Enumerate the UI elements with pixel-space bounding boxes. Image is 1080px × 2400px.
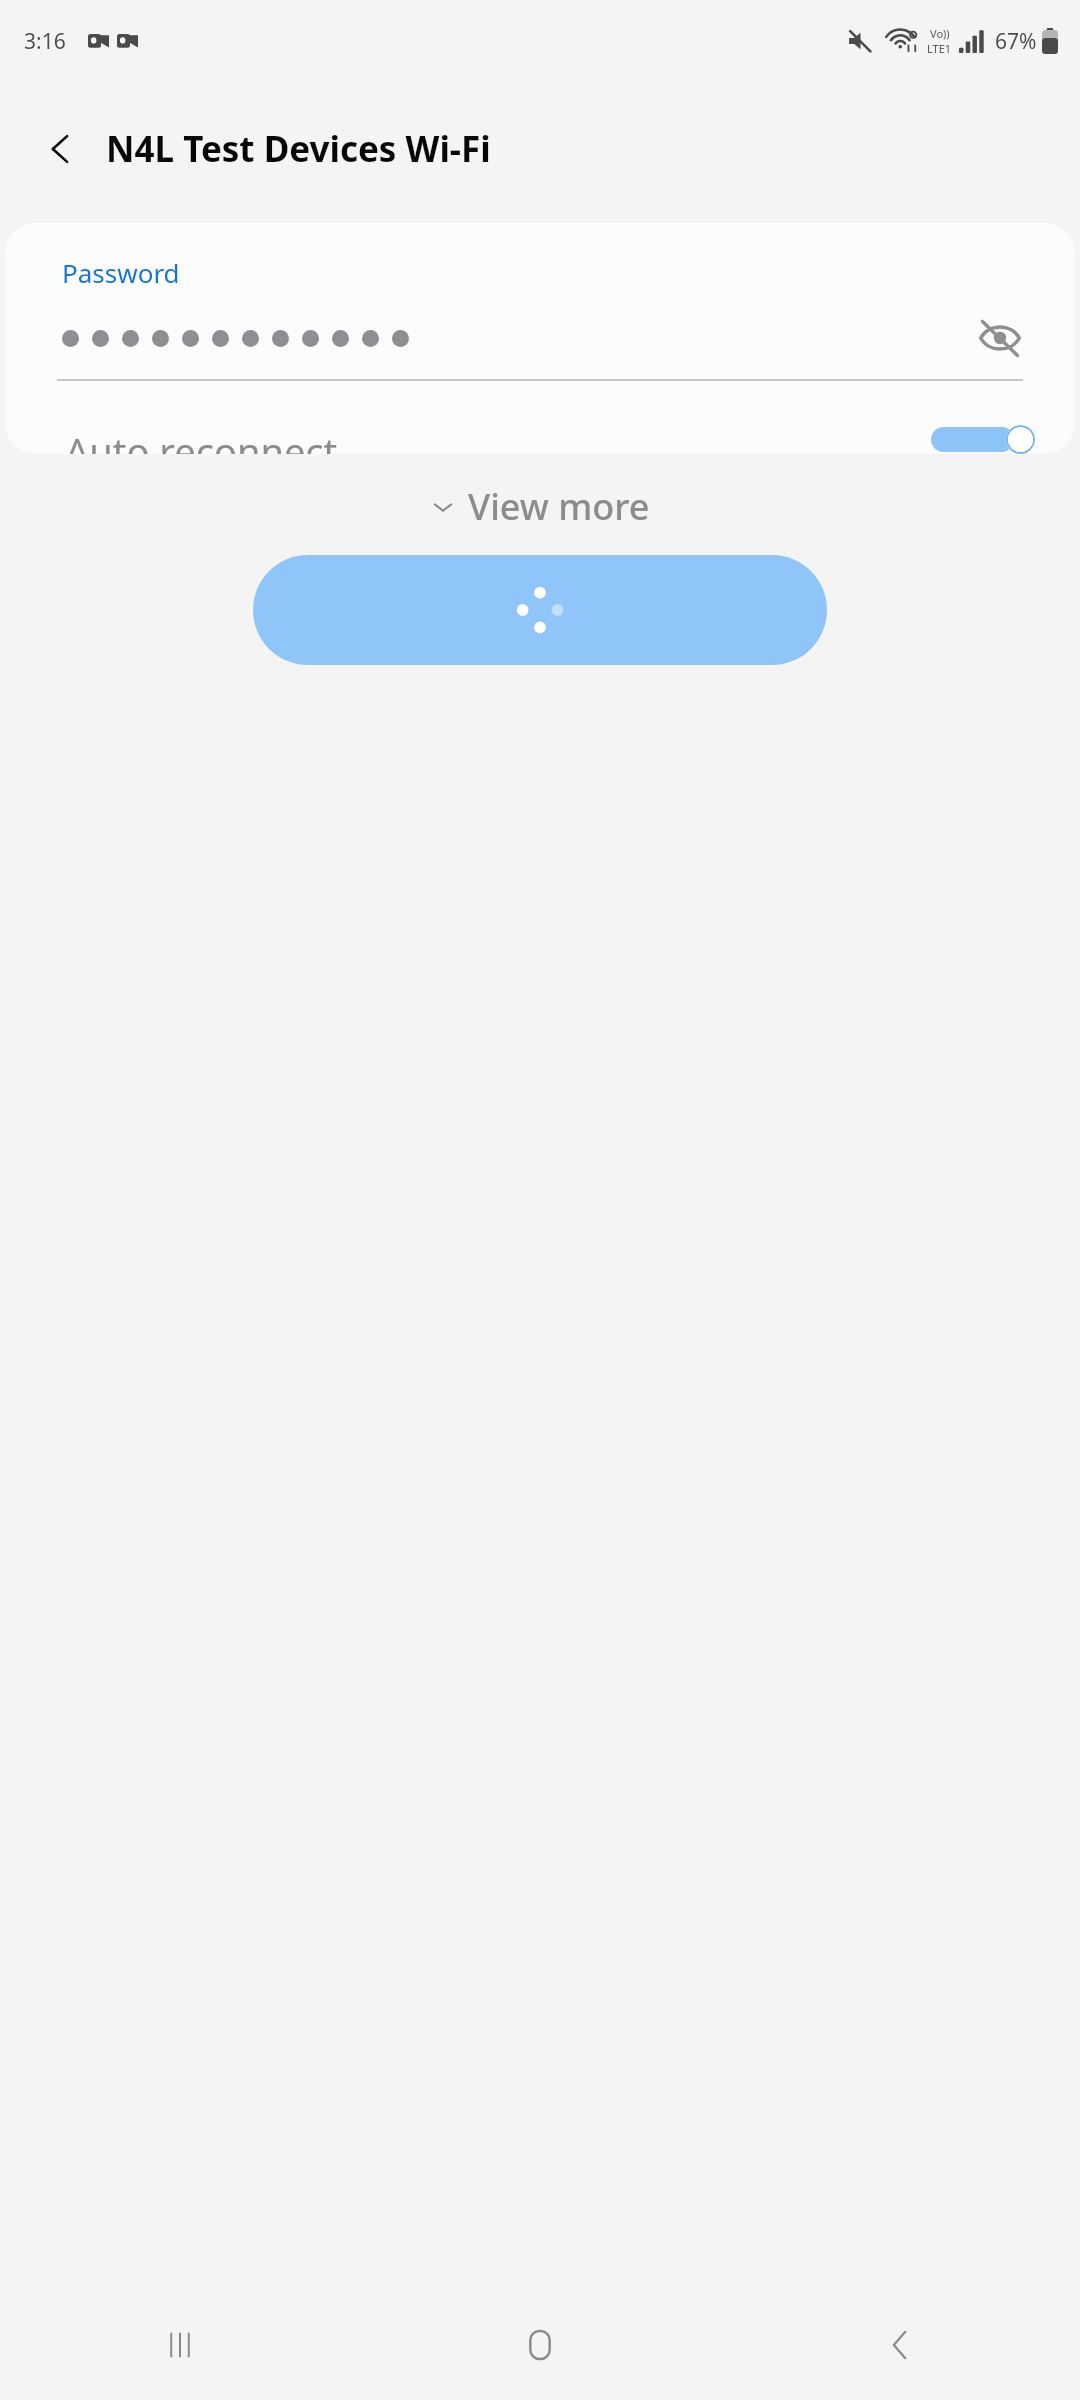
staticText: LTE1 — [927, 41, 952, 56]
button[interactable]: Show password — [969, 310, 1031, 366]
staticText: Vo)) — [930, 26, 950, 41]
button[interactable]: Recent apps — [0, 2290, 360, 2400]
button[interactable]: Back — [720, 2290, 1080, 2400]
button[interactable]: Back — [34, 122, 88, 176]
staticText: Auto reconnect — [65, 425, 931, 454]
staticText: 3:16 — [24, 27, 66, 56]
button[interactable]: Home — [360, 2290, 720, 2400]
staticText: View more — [468, 482, 650, 531]
button[interactable]: Auto reconnect toggle — [931, 425, 1035, 454]
button[interactable]: Auto reconnect — [5, 425, 1075, 454]
button[interactable]: Connecting — [253, 555, 827, 665]
staticText: 67% — [995, 27, 1037, 56]
button[interactable]: View more — [410, 472, 670, 541]
staticText: N4L Test Devices Wi-Fi — [106, 125, 491, 173]
staticText: Password — [62, 255, 180, 290]
